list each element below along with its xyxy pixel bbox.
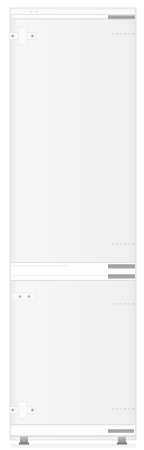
button[interactable]: Integrated fridge freezer product photo bbox=[0, 0, 144, 450]
